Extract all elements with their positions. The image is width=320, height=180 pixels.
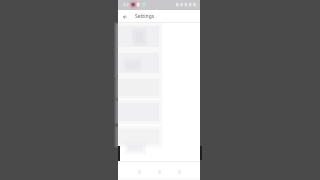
staticText: Settings [135,13,155,20]
button[interactable]: Connected devices [118,76,200,101]
button[interactable]: Home [129,161,149,180]
button[interactable]: Profile [169,161,189,180]
button[interactable]: Library [149,161,169,180]
button[interactable]: Network & internet [118,50,200,75]
button[interactable]: Navigate up [120,12,129,21]
button[interactable]: Display [118,127,200,152]
button[interactable]: Account [118,24,200,49]
button[interactable]: Apps & notifications [118,101,200,126]
